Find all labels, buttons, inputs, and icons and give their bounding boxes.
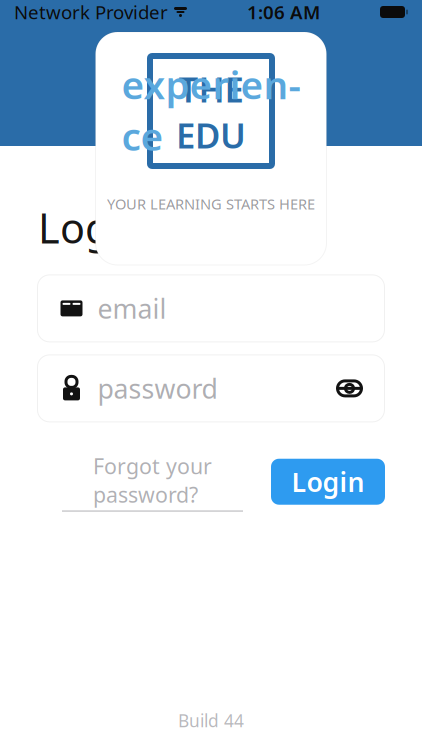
button[interactable]: Forgot your password? <box>62 444 243 520</box>
staticText: YOUR LEARNING STARTS HERE <box>107 194 315 213</box>
button[interactable]: Login <box>271 459 385 505</box>
staticText: THE <box>178 66 243 112</box>
staticText: Network Provider <box>14 0 168 24</box>
staticText: experience <box>121 59 300 161</box>
button[interactable]: password <box>37 355 384 422</box>
staticText: email <box>97 291 166 326</box>
staticText: Forgot your password? <box>93 452 212 509</box>
staticText: password <box>97 371 217 406</box>
staticText: 1:06 AM <box>247 0 320 24</box>
button[interactable]: email <box>37 275 384 342</box>
staticText: Build 44 <box>178 709 244 732</box>
staticText: EDU <box>176 112 246 158</box>
staticText: Login <box>38 200 147 255</box>
staticText: Login <box>291 464 364 499</box>
